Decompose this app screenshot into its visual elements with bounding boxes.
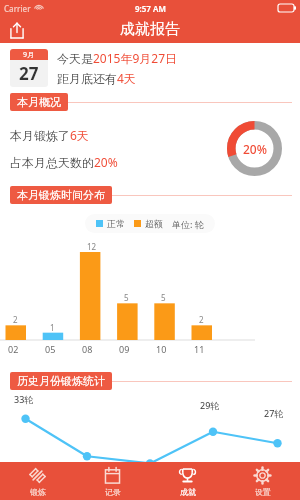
staticText: 12 bbox=[87, 241, 97, 252]
button[interactable]: 成就 bbox=[150, 462, 225, 500]
staticText: 5 bbox=[124, 292, 129, 303]
staticText: 占本月总天数的20% bbox=[10, 154, 118, 170]
staticText: 27轮 bbox=[264, 407, 284, 419]
staticText: 2 bbox=[13, 314, 18, 325]
staticText: 成就 bbox=[180, 487, 196, 497]
staticText: 20% bbox=[243, 141, 267, 157]
staticText: 今天是2015年9月27日 bbox=[57, 50, 178, 66]
staticText: 1 bbox=[50, 322, 55, 333]
staticText: 09 bbox=[119, 343, 130, 355]
staticText: 本月锻炼了6天 bbox=[10, 127, 89, 143]
staticText: 5 bbox=[161, 292, 166, 303]
staticText: 9月 bbox=[23, 50, 35, 60]
staticText: 05 bbox=[45, 343, 56, 355]
staticText: 锻炼 bbox=[30, 487, 46, 497]
staticText: 33轮 bbox=[14, 393, 34, 405]
staticText: 08 bbox=[82, 343, 93, 355]
staticText: 超额 bbox=[145, 218, 163, 229]
staticText: 成就报告 bbox=[120, 20, 180, 39]
staticText: 9:57 AM bbox=[135, 3, 166, 14]
staticText: 27 bbox=[19, 62, 39, 85]
staticText: 历史月份锻炼统计 bbox=[17, 374, 105, 388]
button[interactable]: 设置 bbox=[225, 462, 300, 500]
staticText: 正常 bbox=[107, 218, 125, 229]
staticText: Carrier bbox=[4, 3, 31, 14]
staticText: 记录 bbox=[105, 487, 121, 497]
staticText: 本月概况 bbox=[17, 95, 61, 109]
button[interactable]: 锻炼 bbox=[0, 462, 75, 500]
button[interactable]: Share bbox=[6, 19, 28, 41]
staticText: 10 bbox=[156, 343, 167, 355]
staticText: 11 bbox=[194, 343, 205, 355]
staticText: 02 bbox=[8, 343, 19, 355]
staticText: 29轮 bbox=[200, 399, 220, 411]
staticText: 设置 bbox=[255, 487, 271, 497]
button[interactable]: 记录 bbox=[75, 462, 150, 500]
staticText: 距月底还有4天 bbox=[57, 70, 136, 86]
staticText: 本月锻炼时间分布 bbox=[17, 188, 105, 202]
staticText: 单位: 轮 bbox=[172, 218, 204, 230]
staticText: 2 bbox=[199, 314, 204, 325]
